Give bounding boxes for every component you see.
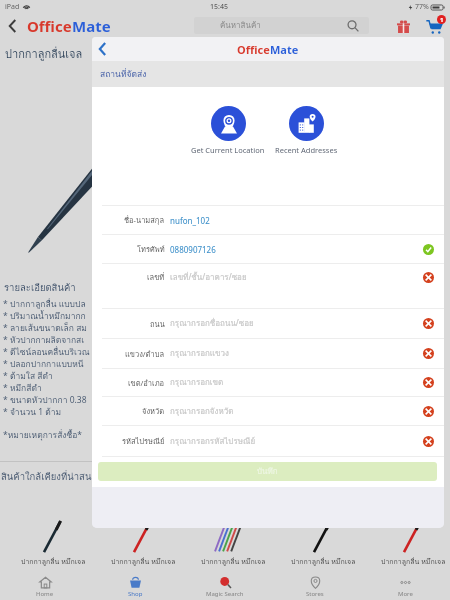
button[interactable]: ปากกาลูกลื่น หมึกเจล [98, 517, 188, 573]
staticText: เลขที่/ชั้น/อาคาร/ซอย [170, 271, 247, 284]
staticText: รายละเอียดสินค้า [4, 280, 76, 295]
staticText: 0880907126 [170, 244, 216, 255]
staticText: * ปลอกปากกาแบบหนี [3, 357, 95, 369]
button[interactable]: Magic Search [180, 573, 270, 600]
staticText: Mate [72, 16, 111, 36]
staticText: ค้นหาสินค้า [220, 19, 261, 32]
button[interactable]: Cart [422, 14, 447, 37]
staticText: * หมึกสีดำ [3, 381, 95, 393]
staticText: ถนน [150, 318, 165, 330]
button[interactable]: ปากกาลูกลื่น หมึกเจล [8, 517, 98, 573]
staticText: * ขนาดหัวปากกา 0.38 [3, 393, 95, 405]
staticText: ปากกาลูกลื่น หมึกเจล [291, 556, 356, 567]
button[interactable]: ค้นหาสินค้า [194, 17, 369, 34]
button[interactable]: ปากกาลูกลื่น หมึกเจล [278, 517, 368, 573]
staticText: Office [27, 16, 72, 36]
staticText: Stores [306, 590, 324, 598]
staticText: กรุณากรอกเขต [170, 376, 224, 389]
button[interactable]: เลขที่ [92, 264, 444, 308]
button[interactable]: รหัสไปรษณีย์ [92, 426, 444, 456]
staticText: * ปริมาณน้ำหมึกมากก [3, 309, 95, 321]
staticText: More [398, 590, 413, 598]
staticText: ชื่อ-นามสกุล [124, 214, 165, 226]
button[interactable]: Shop [90, 573, 180, 600]
button[interactable]: จังหวัด [92, 397, 444, 425]
staticText: Home [36, 590, 54, 598]
staticText: เลขที่ [147, 271, 165, 283]
staticText: แขวง/ตำบล [125, 348, 165, 360]
button[interactable]: ถนน [92, 309, 444, 338]
button[interactable]: บันทึก [98, 462, 437, 481]
button[interactable]: ชื่อ-นามสกุล [92, 206, 444, 234]
staticText: กรุณากรอกแขวง [170, 347, 229, 360]
staticText: สินค้าใกล้เคียงที่น่าสน [1, 469, 92, 484]
button[interactable]: โทรศัพท์ [92, 235, 444, 263]
button[interactable]: Get Current Location [191, 106, 265, 155]
button[interactable]: Back [0, 14, 24, 37]
staticText: Office [237, 42, 270, 57]
staticText: ปากกาลูกลื่น หมึกเจล [111, 556, 176, 567]
staticText: 77% [415, 2, 429, 12]
staticText: * จำนวน 1 ด้าม [3, 405, 95, 417]
staticText: * ลายเส้นขนาดเล็ก สม [3, 321, 95, 333]
button[interactable]: เขต/อำเภอ [92, 369, 444, 396]
staticText: 1 [440, 16, 444, 24]
staticText: จังหวัด [142, 405, 165, 417]
staticText: Shop [128, 590, 143, 598]
staticText: โทรศัพท์ [137, 243, 165, 255]
staticText: Mate [270, 42, 299, 57]
staticText: ปากกาลูกลื่น หมึกเจล [201, 556, 266, 567]
staticText: * หัวปากกาผลิตจากสเ [3, 333, 95, 345]
staticText: กรุณากรอกชื่อถนน/ซอย [170, 317, 254, 330]
button[interactable]: Recent Addresses [275, 106, 338, 155]
staticText: รหัสไปรษณีย์ [122, 435, 165, 447]
button[interactable]: Gifts [392, 15, 414, 37]
button[interactable]: Stores [270, 573, 360, 600]
staticText: บันทึก [257, 465, 278, 478]
staticText: กรุณากรอกรหัสไปรษณีย์ [170, 435, 256, 448]
staticText: เขต/อำเภอ [128, 377, 165, 389]
staticText: Magic Search [206, 590, 244, 598]
button[interactable]: Home [0, 573, 90, 600]
button[interactable]: ปากกาลูกลื่น หมึกเจล [368, 517, 450, 573]
staticText: ปากกาลูกลื่น หมึกเจล [21, 556, 86, 567]
staticText: *หมายเหตุการสั่งซื้อ* [3, 428, 83, 442]
staticText: * ปากกาลูกลื่น แบบปล [3, 297, 95, 309]
button[interactable]: Back [92, 37, 112, 61]
staticText: * ดีไซน์ลอนคลื่นบริเวณ [3, 345, 95, 357]
button[interactable]: More [360, 573, 450, 600]
staticText: ปากกาลูกลื่นเจล [5, 45, 83, 62]
staticText: ปากกาลูกลื่น หมึกเจล [381, 556, 446, 567]
button[interactable]: ปากกาลูกลื่น หมึกเจล [188, 517, 278, 573]
staticText: Recent Addresses [275, 145, 338, 155]
staticText: * ด้ามใส สีดำ [3, 369, 95, 381]
staticText: สถานที่จัดส่ง [100, 67, 147, 81]
staticText: iPad [5, 2, 20, 12]
staticText: กรุณากรอกจังหวัด [170, 405, 234, 418]
staticText: nufon_102 [170, 215, 210, 226]
staticText: 15:45 [210, 2, 228, 12]
button[interactable]: แขวง/ตำบล [92, 339, 444, 368]
staticText: Get Current Location [191, 145, 265, 155]
